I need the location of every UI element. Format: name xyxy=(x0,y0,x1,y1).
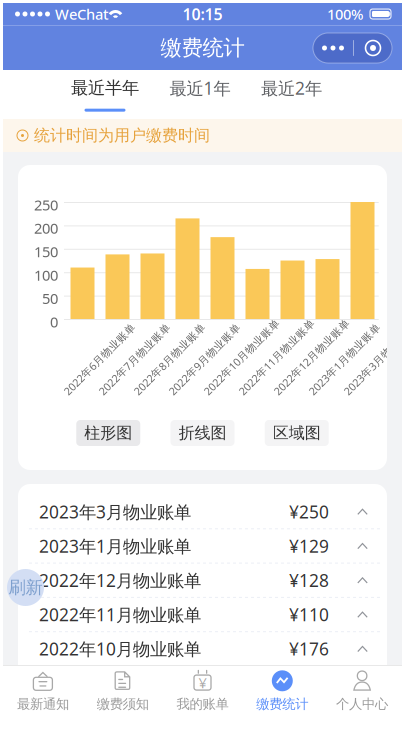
staticText: 2022年12月物业账单 xyxy=(39,569,201,592)
staticText: 2023年1月物业账单 xyxy=(39,534,191,557)
staticText: ¥250 xyxy=(289,500,329,523)
button[interactable]: 2022年12月物业账单 xyxy=(18,564,387,598)
button[interactable]: 缴费统计 xyxy=(242,665,322,712)
staticText: 50 xyxy=(42,289,58,308)
staticText: 区域图 xyxy=(273,423,321,443)
staticText: 最近2年 xyxy=(261,76,322,99)
staticText: 2022年10月物业账单 xyxy=(39,637,201,660)
button[interactable]: 最近1年 xyxy=(169,70,230,119)
staticText: 缴费须知 xyxy=(97,696,149,712)
staticText: 缴费统计 xyxy=(256,696,308,712)
staticText: ¥129 xyxy=(289,534,329,557)
staticText: 刷新 xyxy=(8,577,42,598)
button[interactable]: ¥ xyxy=(163,665,242,712)
staticText: 2022年11月物业账单 xyxy=(245,384,347,398)
staticText: 2022年12月物业账单 xyxy=(280,384,382,398)
staticText: 2022年10月物业账单 xyxy=(210,384,312,398)
button[interactable]: 折线图 xyxy=(170,420,234,446)
button[interactable]: 区域图 xyxy=(265,420,329,446)
button[interactable]: 最近2年 xyxy=(261,70,322,119)
button[interactable]: 2023年3月物业账单 xyxy=(18,495,387,529)
button[interactable]: More xyxy=(313,33,392,63)
staticText: 2023年3月物业账单 xyxy=(39,500,191,523)
staticText: 最近半年 xyxy=(71,77,139,99)
staticText: 200 xyxy=(34,218,58,238)
staticText: 150 xyxy=(34,242,58,261)
button[interactable]: 柱形图 xyxy=(76,420,140,446)
staticText: 10:15 xyxy=(182,3,222,25)
staticText: 2022年7月物业账单 xyxy=(105,384,201,398)
staticText: ¥176 xyxy=(289,637,329,660)
button[interactable]: 2022年10月物业账单 xyxy=(18,632,387,666)
button[interactable]: 刷新 xyxy=(7,569,44,606)
staticText: 100% xyxy=(327,4,363,24)
staticText: ¥128 xyxy=(289,569,329,592)
staticText: 2022年9月物业账单 xyxy=(39,672,191,695)
staticText: 2023年3月物业账单 xyxy=(350,384,406,398)
staticText: 2022年6月物业账单 xyxy=(70,384,166,398)
staticText: 0 xyxy=(50,312,58,331)
button[interactable]: 2022年9月物业账单 xyxy=(18,666,387,700)
staticText: 柱形图 xyxy=(84,423,132,443)
staticText: ¥110 xyxy=(289,603,329,626)
button[interactable]: 缴费须知 xyxy=(83,665,163,712)
staticText: 最新通知 xyxy=(17,696,69,712)
staticText: ¥ xyxy=(198,673,206,692)
staticText: 2022年8月物业账单 xyxy=(140,384,236,398)
staticText: 缴费统计 xyxy=(160,35,244,61)
button[interactable]: 最近半年 xyxy=(71,70,139,119)
staticText: ¥140 xyxy=(289,672,329,695)
staticText: 折线图 xyxy=(178,423,226,443)
staticText: 我的账单 xyxy=(176,696,228,712)
button[interactable]: 2023年1月物业账单 xyxy=(18,529,387,564)
staticText: 统计时间为用户缴费时间 xyxy=(34,126,210,145)
staticText: 2023年1月物业账单 xyxy=(315,384,406,398)
staticText: 2022年11月物业账单 xyxy=(39,603,201,626)
staticText: 个人中心 xyxy=(336,696,388,712)
staticText: 2022年9月物业账单 xyxy=(175,384,271,398)
staticText: 250 xyxy=(34,195,58,214)
staticText: 100 xyxy=(34,265,58,285)
button[interactable]: 最新通知 xyxy=(3,665,83,712)
staticText: WeChat xyxy=(55,4,109,24)
button[interactable]: 2022年11月物业账单 xyxy=(18,598,387,632)
staticText: 最近1年 xyxy=(169,76,230,99)
button[interactable]: 个人中心 xyxy=(322,665,402,712)
